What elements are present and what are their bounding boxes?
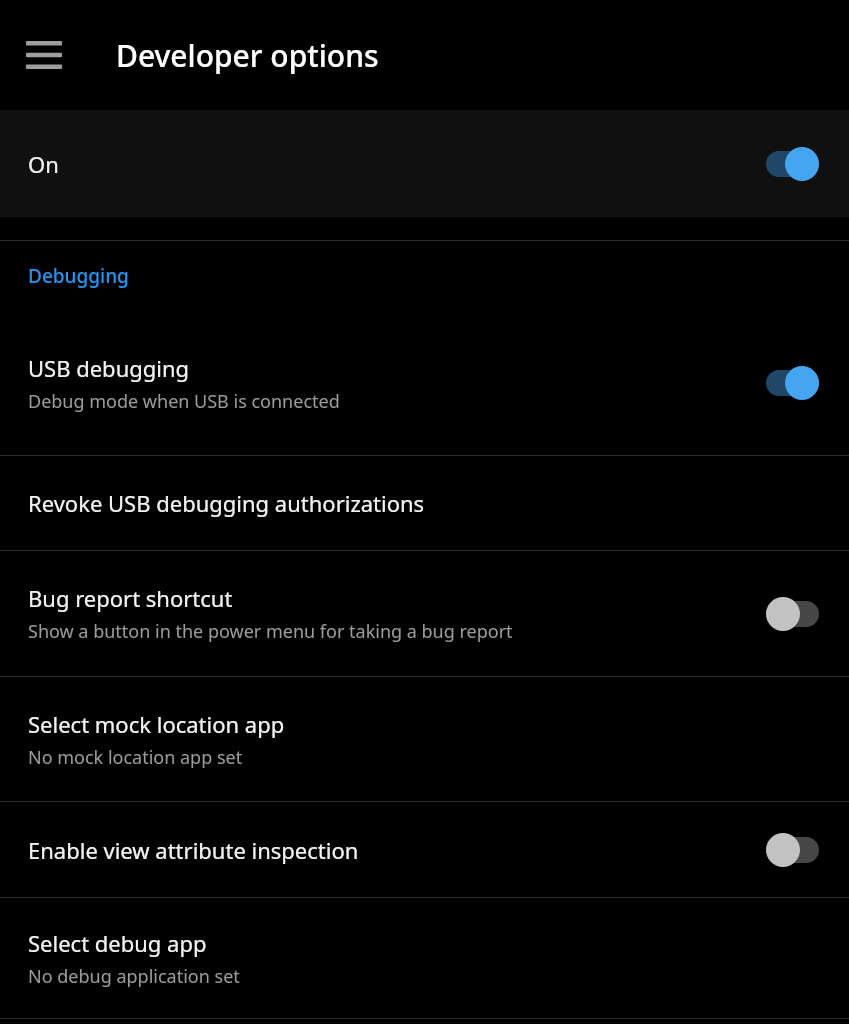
button[interactable]: USB debugging (0, 311, 849, 455)
button[interactable]: Toggle developer options (753, 144, 819, 184)
button[interactable]: Bug report shortcut (0, 551, 849, 676)
staticText: USB debugging (28, 353, 190, 383)
staticText: Show a button in the power menu for taki… (28, 619, 513, 644)
staticText: Bug report shortcut (28, 583, 233, 613)
staticText: No debug application set (28, 964, 240, 989)
button[interactable]: Toggle Enable view attribute inspection (753, 830, 819, 870)
button[interactable]: On (0, 110, 849, 217)
button[interactable]: Revoke USB debugging authorizations (0, 456, 849, 550)
staticText: Enable view attribute inspection (28, 835, 359, 865)
button[interactable]: Toggle Bug report shortcut (753, 594, 819, 634)
staticText: Debug mode when USB is connected (28, 389, 340, 414)
button[interactable]: Enable view attribute inspection (0, 802, 849, 897)
staticText: Select debug app (28, 928, 207, 958)
staticText: Developer options (116, 35, 379, 76)
button[interactable]: Open navigation menu (18, 29, 70, 81)
staticText: Debugging (28, 263, 129, 289)
staticText: No mock location app set (28, 745, 243, 770)
staticText: Revoke USB debugging authorizations (28, 488, 425, 518)
button[interactable]: Select debug app (0, 898, 849, 1018)
button[interactable]: Toggle USB debugging (753, 363, 819, 403)
staticText: On (28, 149, 753, 179)
staticText: Select mock location app (28, 709, 285, 739)
button[interactable]: Select mock location app (0, 677, 849, 801)
